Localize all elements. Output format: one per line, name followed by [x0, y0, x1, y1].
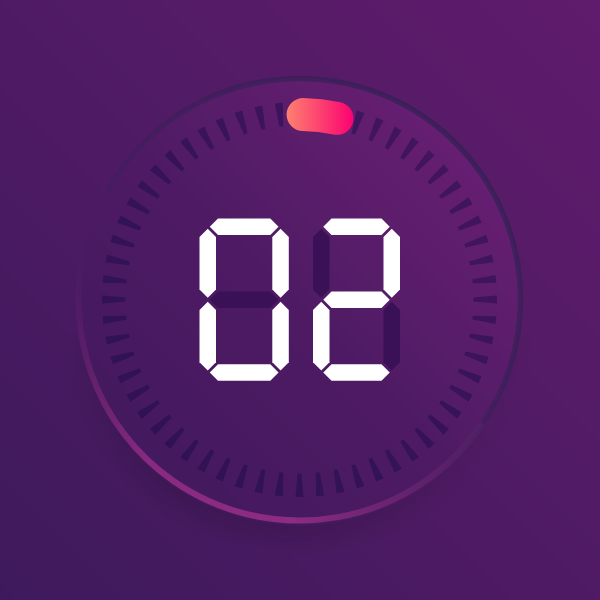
- button[interactable]: Stopwatch timer showing 02: [0, 0, 600, 600]
